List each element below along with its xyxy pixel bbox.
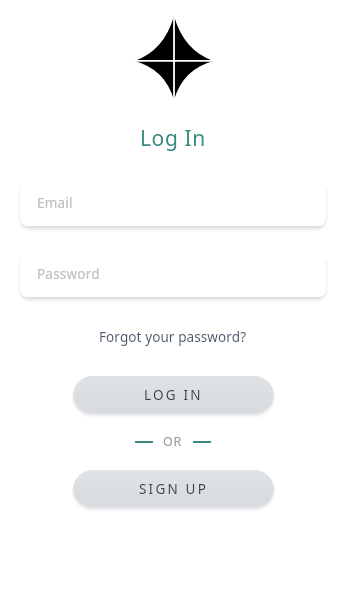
button[interactable]: SIGN UP [74,470,273,507]
staticText: Password [37,265,100,283]
staticText: LOG IN [144,386,203,404]
button[interactable]: Forgot your password? [93,326,253,348]
staticText: OR [163,433,183,450]
staticText: Forgot your password? [99,328,247,346]
staticText: SIGN UP [139,480,209,498]
button[interactable]: Email [20,180,326,226]
button[interactable]: Password [20,251,326,297]
staticText: Email [37,194,73,212]
staticText: Log In [140,124,206,153]
button[interactable]: LOG IN [74,376,273,413]
